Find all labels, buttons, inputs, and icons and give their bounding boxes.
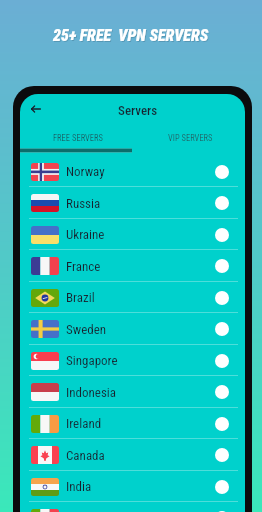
button[interactable]: VIP SERVERS [132,124,245,149]
staticText: 25+ FREE VPN SERVERS [54,27,210,46]
staticText: Norway [66,164,105,179]
button[interactable]: Ireland [20,408,245,439]
staticText: Servers [118,103,158,118]
staticText: Russia [66,196,101,211]
staticText: VIP SERVERS [168,133,213,143]
staticText: Canada [66,448,105,463]
button[interactable]: Norway [20,156,245,187]
button[interactable]: FREE SERVERS [20,124,132,149]
button[interactable]: Russia [20,187,245,219]
button[interactable]: Brazil [20,282,245,313]
button[interactable]: Indonesia [20,376,245,408]
button[interactable]: Singapore [20,345,245,376]
button[interactable]: Ukraine [20,219,245,250]
button[interactable]: India [20,471,245,502]
staticText: Ukraine [66,227,105,242]
button[interactable]: France [20,250,245,282]
staticText: Brazil [66,290,95,305]
button[interactable]: Back [25,98,47,120]
staticText: FREE SERVERS [53,133,103,143]
staticText: France [66,259,101,274]
staticText: 25+ FREE VPN SERVERS [53,26,209,45]
button[interactable]: Sweden [20,313,245,345]
staticText: Indonesia [66,385,117,400]
button[interactable]: Italy [20,502,245,512]
staticText: Ireland [66,416,102,431]
staticText: Sweden [66,322,107,337]
button[interactable]: Canada [20,439,245,471]
staticText: Singapore [66,353,118,368]
staticText: India [66,479,92,494]
